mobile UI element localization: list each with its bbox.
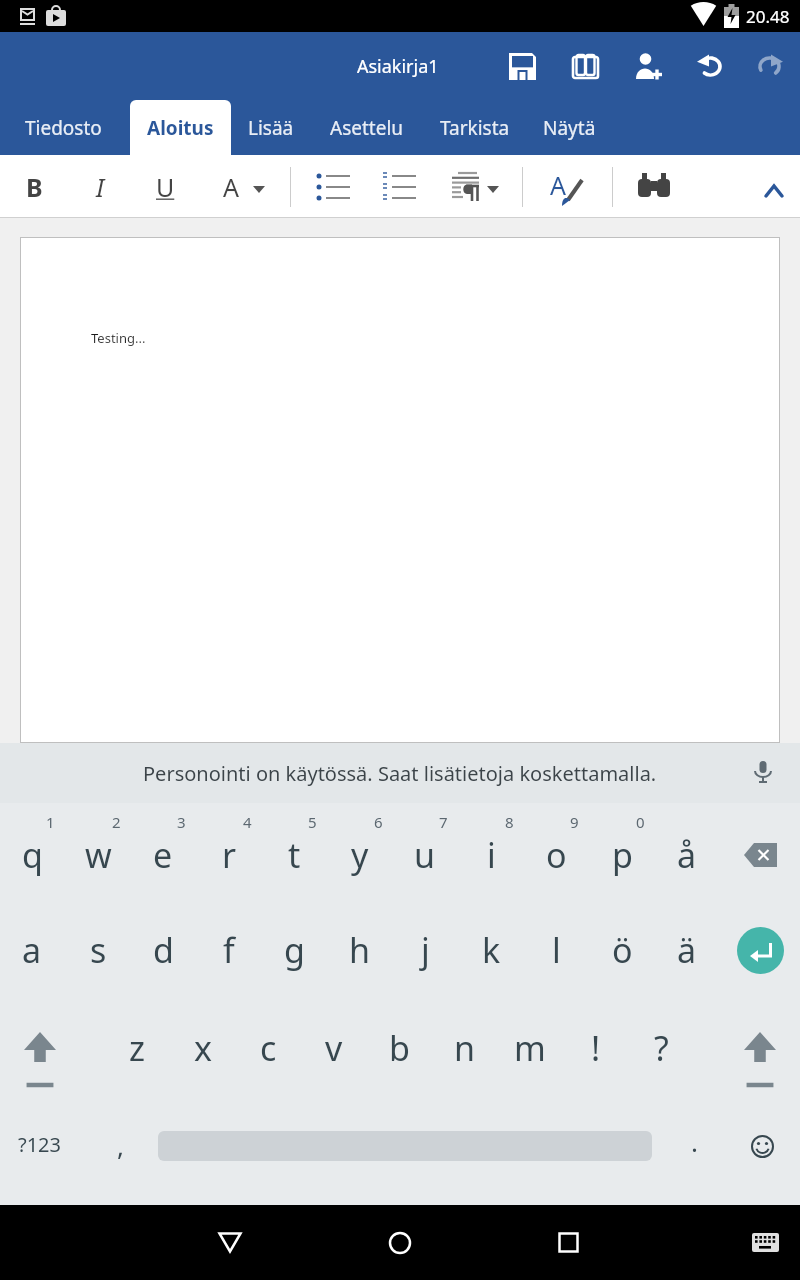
staticText: 0 (636, 812, 645, 832)
button[interactable]: Näytä (543, 115, 596, 141)
staticText: 9 (570, 812, 579, 832)
staticText: B (26, 170, 43, 204)
button[interactable] (509, 53, 536, 80)
staticText: Asettelu (330, 115, 404, 141)
button[interactable] (316, 170, 350, 204)
button[interactable]: ä (663, 926, 711, 974)
staticText: t (288, 832, 301, 878)
button[interactable] (757, 53, 784, 80)
staticText: Lisää (248, 115, 294, 141)
staticText: s (90, 927, 107, 973)
button[interactable]: i (467, 831, 515, 879)
button[interactable]: ?123 (18, 1131, 61, 1158)
staticText: Testing... (91, 329, 146, 347)
button[interactable] (451, 171, 481, 201)
button[interactable]: ! (572, 1024, 620, 1072)
button[interactable]: m (506, 1024, 554, 1072)
button[interactable]: Lisää (248, 115, 294, 141)
staticText: l (552, 927, 561, 973)
button[interactable]: u (401, 831, 449, 879)
button[interactable]: n (441, 1024, 489, 1072)
button[interactable]: d (139, 926, 187, 974)
button[interactable]: z (113, 1024, 161, 1072)
staticText: g (284, 927, 305, 973)
button[interactable]: e (139, 831, 187, 879)
button[interactable] (752, 1233, 779, 1252)
staticText: p (612, 832, 633, 878)
button[interactable]: p (598, 831, 646, 879)
staticText: q (22, 832, 43, 878)
button[interactable]: v (310, 1024, 358, 1072)
button[interactable] (744, 1032, 776, 1090)
button[interactable]: å (663, 831, 711, 879)
button[interactable]: b (375, 1024, 423, 1072)
button[interactable]: h (336, 926, 384, 974)
button[interactable]: r (205, 831, 253, 879)
staticText: Asiakirja1 (357, 54, 439, 79)
button[interactable]: y (336, 831, 384, 879)
staticText: ö (612, 927, 633, 973)
button[interactable] (572, 53, 599, 80)
staticText: 4 (243, 812, 252, 832)
button[interactable] (752, 1136, 773, 1157)
staticText: m (514, 1025, 546, 1071)
button[interactable]: f (205, 926, 253, 974)
button[interactable]: x (179, 1024, 227, 1072)
staticText: a (22, 927, 42, 973)
staticText: v (325, 1025, 343, 1071)
staticText: Personointi on käytössä. Saat lisätietoj… (143, 760, 657, 787)
staticText: 7 (439, 812, 448, 832)
button[interactable]: ? (637, 1024, 685, 1072)
staticText: 20.48 (746, 5, 790, 28)
staticText: U (156, 170, 175, 204)
staticText: Näytä (543, 115, 596, 141)
staticText: f (223, 927, 235, 973)
button[interactable]: t (270, 831, 318, 879)
staticText: Aloitus (147, 115, 214, 141)
button[interactable] (635, 53, 662, 80)
staticText: c (260, 1025, 277, 1071)
button[interactable]: g (270, 926, 318, 974)
button[interactable]: c (244, 1024, 292, 1072)
button[interactable]: l (532, 926, 580, 974)
button[interactable]: Asettelu (330, 115, 404, 141)
staticText: y (351, 832, 369, 878)
button[interactable] (744, 843, 777, 867)
button[interactable]: . (684, 1121, 704, 1161)
button[interactable]: a (8, 926, 56, 974)
button[interactable]: w (74, 831, 122, 879)
button[interactable] (382, 170, 416, 204)
button[interactable]: j (401, 926, 449, 974)
button[interactable] (737, 927, 784, 974)
button[interactable]: , (110, 1125, 130, 1165)
button[interactable] (696, 53, 723, 80)
button[interactable]: Tiedosto (25, 115, 102, 141)
staticText: u (414, 832, 436, 878)
staticText: å (677, 832, 697, 878)
button[interactable]: q (8, 831, 56, 879)
staticText: 2 (112, 812, 121, 832)
button[interactable]: A (548, 166, 590, 208)
staticText: k (482, 927, 501, 973)
button[interactable]: s (74, 926, 122, 974)
button[interactable] (558, 1232, 579, 1253)
button[interactable] (388, 1231, 412, 1255)
staticText: Tarkista (440, 115, 510, 141)
button[interactable]: o (532, 831, 580, 879)
button[interactable] (637, 171, 671, 203)
button[interactable]: Tarkista (440, 115, 510, 141)
button[interactable] (218, 1232, 242, 1253)
button[interactable] (24, 1032, 56, 1090)
button[interactable] (754, 761, 772, 785)
staticText: ?123 (18, 1131, 61, 1158)
button[interactable]: k (467, 926, 515, 974)
staticText: 1 (46, 812, 55, 832)
staticText: A (223, 170, 239, 204)
button[interactable]: Aloitus (130, 100, 231, 155)
staticText: j (421, 927, 430, 973)
button[interactable] (764, 184, 784, 198)
staticText: ! (591, 1025, 601, 1071)
button[interactable]: ö (598, 926, 646, 974)
staticText: e (153, 832, 173, 878)
